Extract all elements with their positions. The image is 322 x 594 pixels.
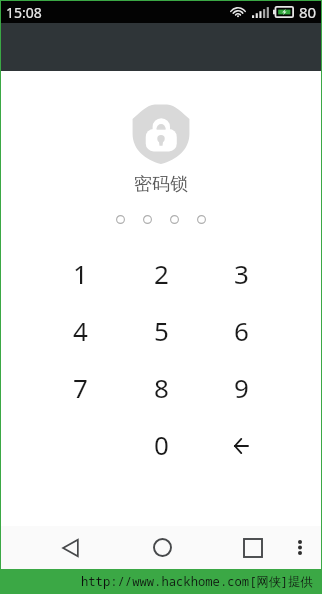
staticText: http://www.hackhome.com[网侠]提供	[81, 573, 313, 590]
staticText: 2	[154, 256, 169, 291]
staticText: 0	[154, 427, 169, 462]
staticText: 6	[234, 313, 249, 348]
staticText: 3	[234, 256, 249, 291]
button[interactable]: 9	[201, 359, 281, 416]
button[interactable]: Home	[142, 527, 182, 568]
other: Delete	[234, 438, 248, 454]
button[interactable]: 6	[201, 302, 281, 359]
button[interactable]: More options	[283, 527, 317, 568]
button[interactable]: 2	[121, 245, 201, 302]
button[interactable]: 8	[121, 359, 201, 416]
button[interactable]: 7	[40, 359, 121, 416]
button[interactable]: Delete	[201, 416, 281, 473]
staticText: 密码锁	[134, 173, 188, 196]
staticText: 4	[73, 313, 88, 348]
button[interactable]: 0	[121, 416, 201, 473]
staticText: 80	[299, 2, 317, 22]
staticText: 7	[73, 370, 88, 405]
staticText: 1	[73, 256, 88, 291]
staticText: 5	[154, 313, 169, 348]
button[interactable]: 3	[201, 245, 281, 302]
staticText: 8	[154, 370, 169, 405]
staticText: 15:08	[6, 3, 42, 22]
button[interactable]: 1	[40, 245, 121, 302]
button[interactable]: 5	[121, 302, 201, 359]
staticText: 9	[234, 370, 249, 405]
button[interactable]: Recents	[233, 527, 273, 568]
button[interactable]: 4	[40, 302, 121, 359]
button[interactable]: Back	[51, 527, 91, 568]
